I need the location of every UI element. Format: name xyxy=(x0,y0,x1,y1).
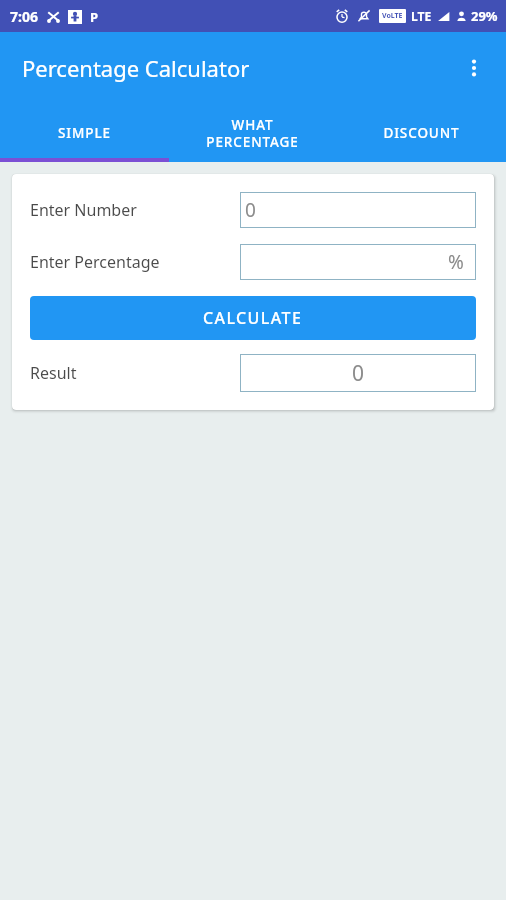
staticText: DISCOUNT xyxy=(383,124,460,142)
button[interactable]: WHAT PERCENTAGE xyxy=(168,104,337,162)
button[interactable]: % xyxy=(240,244,476,280)
staticText: VoLTE xyxy=(382,11,403,21)
staticText: Enter Number xyxy=(30,199,240,221)
staticText: Enter Percentage xyxy=(30,251,240,273)
staticText: 0 xyxy=(245,197,256,223)
staticText: SIMPLE xyxy=(58,124,111,142)
staticText: Percentage Calculator xyxy=(22,53,250,83)
staticText: 29% xyxy=(471,7,498,25)
button[interactable]: CALCULATE xyxy=(30,296,476,340)
button[interactable]: DISCOUNT xyxy=(337,104,506,162)
button[interactable]: SIMPLE xyxy=(0,104,168,162)
button[interactable]: 0 xyxy=(240,192,476,228)
button[interactable]: More options xyxy=(450,44,498,92)
staticText: P xyxy=(90,8,99,26)
staticText: CALCULATE xyxy=(203,307,303,329)
staticText: LTE xyxy=(411,8,432,24)
staticText: 0 xyxy=(352,359,365,388)
staticText: Result xyxy=(30,362,240,384)
staticText: % xyxy=(448,249,464,275)
staticText: WHAT PERCENTAGE xyxy=(206,116,299,151)
staticText: 7:06 xyxy=(10,7,38,26)
button[interactable]: 0 xyxy=(240,354,476,392)
